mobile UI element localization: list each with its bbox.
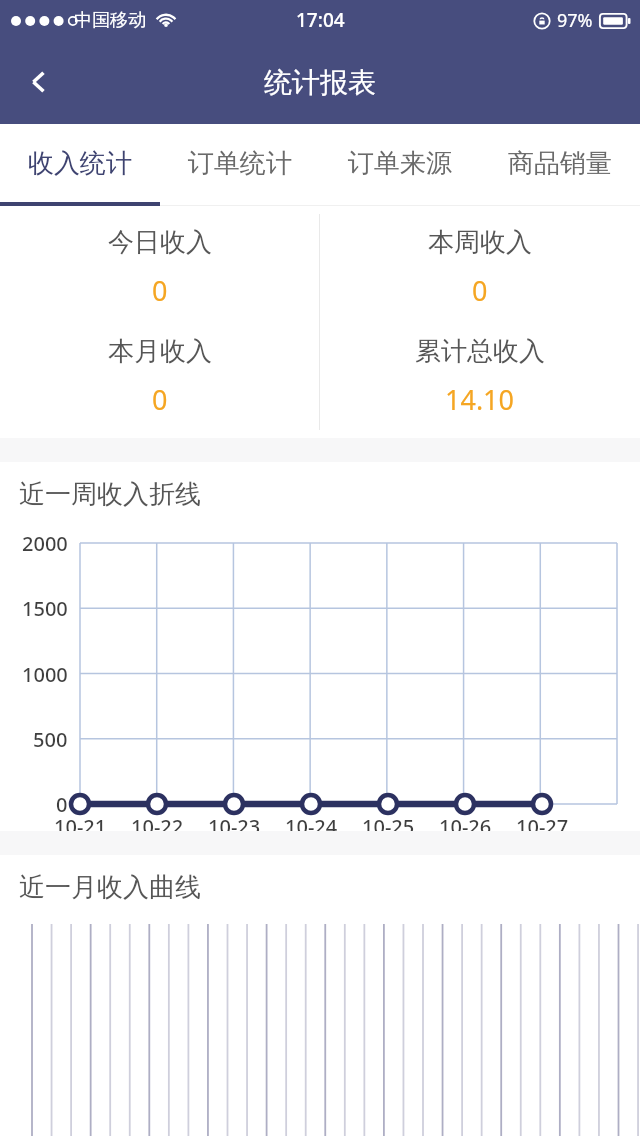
staticText: 2000 xyxy=(22,530,68,557)
staticText: 500 xyxy=(33,726,68,753)
staticText: 0 xyxy=(56,791,68,818)
staticText: 0 xyxy=(152,381,168,418)
staticText: 0 xyxy=(152,272,168,309)
staticText: 10-24 xyxy=(285,813,338,840)
button[interactable]: Back xyxy=(0,40,78,124)
staticText: 0 xyxy=(472,272,488,309)
staticText: 订单来源 xyxy=(348,147,452,180)
staticText: 订单统计 xyxy=(188,147,292,180)
staticText: 统计报表 xyxy=(264,65,376,100)
staticText: 10-23 xyxy=(208,813,261,840)
button[interactable]: 商品销量 xyxy=(480,124,640,202)
staticText: 97% xyxy=(557,8,593,33)
staticText: 今日收入 xyxy=(108,226,212,259)
staticText: 本周收入 xyxy=(428,226,532,259)
staticText: 10-25 xyxy=(362,813,415,840)
staticText: 10-21 xyxy=(54,813,107,840)
staticText: 1000 xyxy=(22,661,68,688)
button[interactable]: 收入统计 xyxy=(0,124,160,202)
staticText: 收入统计 xyxy=(28,147,132,180)
staticText: 中国移动 xyxy=(74,9,146,32)
staticText: 10-22 xyxy=(131,813,184,840)
staticText: 商品销量 xyxy=(508,147,612,180)
button[interactable]: 订单统计 xyxy=(160,124,320,202)
button[interactable]: 订单来源 xyxy=(320,124,480,202)
staticText: 14.10 xyxy=(445,381,515,418)
staticText: 10-26 xyxy=(439,813,492,840)
staticText: 1500 xyxy=(22,595,68,622)
staticText: 本月收入 xyxy=(108,335,212,368)
staticText: 17:04 xyxy=(296,7,345,33)
staticText: 近一周收入折线 xyxy=(19,478,201,511)
staticText: 10-27 xyxy=(516,813,569,840)
staticText: 近一月收入曲线 xyxy=(19,871,201,904)
staticText: 累计总收入 xyxy=(415,335,545,368)
